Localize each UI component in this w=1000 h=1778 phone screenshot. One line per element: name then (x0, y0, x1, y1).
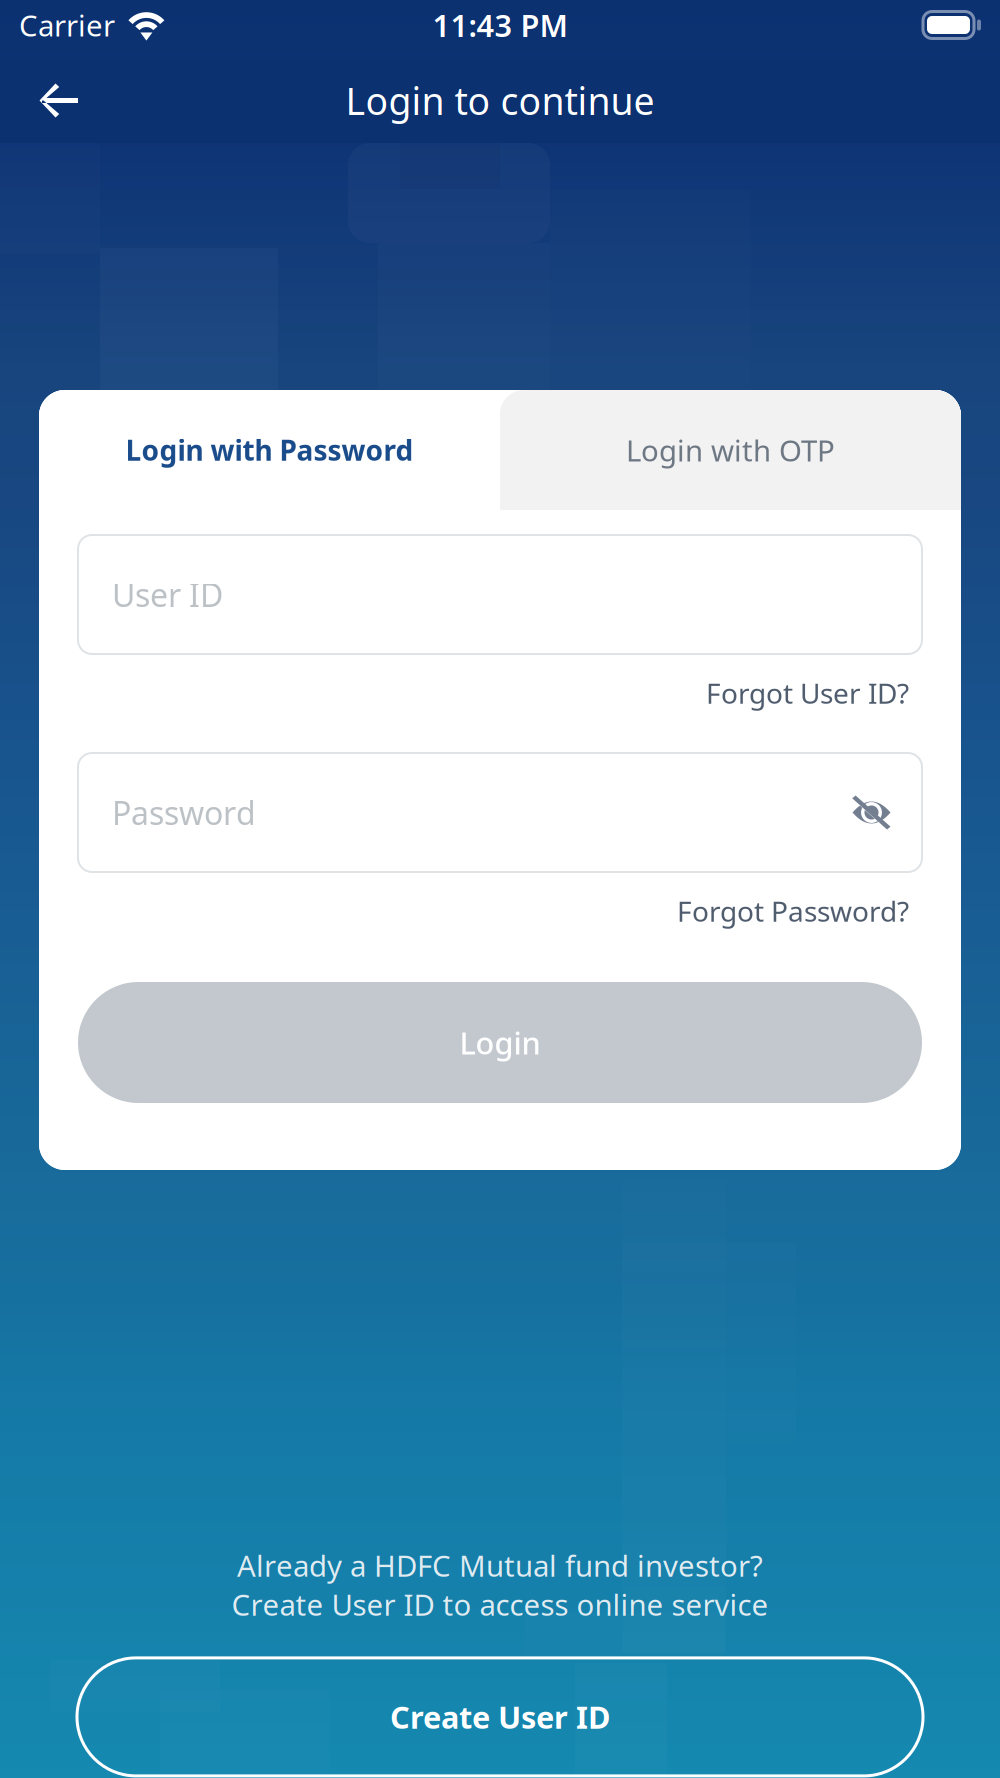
staticText: Create User ID to access online service (231, 1585, 768, 1624)
staticText: Login (459, 1022, 540, 1063)
staticText: Login with Password (125, 431, 413, 469)
button[interactable]: Login with OTP (500, 390, 961, 510)
staticText: Login with OTP (626, 430, 835, 469)
staticText: Forgot Password? (677, 892, 909, 930)
button[interactable]: Login with Password (39, 390, 500, 510)
staticText: 11:43 PM (432, 5, 567, 45)
staticText: Password (112, 791, 256, 834)
staticText: Already a HDFC Mutual fund investor? (237, 1546, 763, 1585)
button[interactable]: Back (16, 62, 102, 138)
staticText: Forgot User ID? (706, 674, 909, 712)
staticText: User ID (112, 573, 223, 616)
button[interactable]: Login (78, 982, 922, 1103)
button[interactable]: Forgot Password? (677, 892, 922, 930)
staticText: Carrier (19, 5, 115, 44)
button[interactable]: Forgot User ID? (706, 674, 922, 712)
staticText: Login to continue (345, 76, 654, 125)
button[interactable]: Create User ID (77, 1658, 923, 1776)
staticText: Create User ID (390, 1696, 610, 1737)
button[interactable]: Show password (851, 795, 892, 829)
